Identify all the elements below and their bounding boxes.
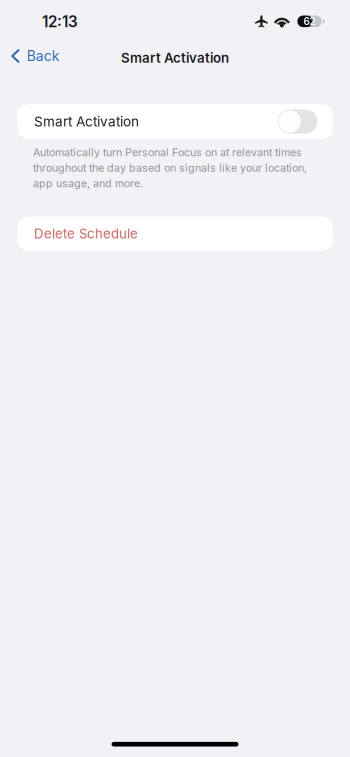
staticText: Smart Activation bbox=[34, 113, 139, 130]
staticText: Delete Schedule bbox=[34, 226, 138, 242]
staticText: 12:13 bbox=[42, 13, 78, 31]
staticText: Automatically turn Personal Focus on at … bbox=[33, 146, 307, 190]
button[interactable]: Delete Schedule bbox=[17, 216, 333, 251]
button[interactable]: Back bbox=[0, 41, 68, 71]
staticText: Back bbox=[27, 48, 60, 64]
staticText: Smart Activation bbox=[121, 50, 229, 66]
button[interactable]: Smart Activation bbox=[17, 104, 333, 139]
staticText: 62 bbox=[304, 15, 316, 27]
